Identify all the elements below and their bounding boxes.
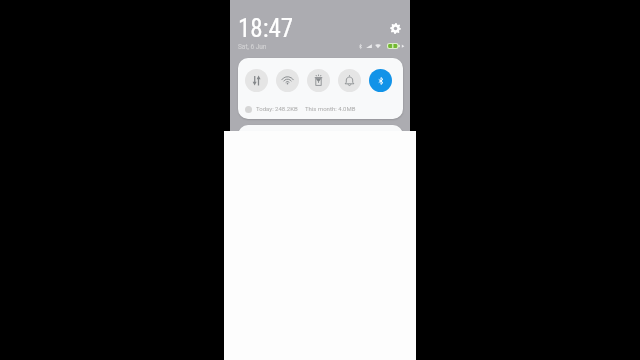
button[interactable]: Sound bbox=[338, 69, 361, 92]
staticText: 18:47 bbox=[238, 14, 294, 43]
button[interactable]: Flashlight bbox=[307, 69, 330, 92]
button[interactable]: Settings bbox=[385, 18, 405, 38]
button[interactable]: Bluetooth bbox=[369, 69, 392, 92]
button[interactable]: Wi-Fi bbox=[276, 69, 299, 92]
button[interactable]: Mobile data bbox=[245, 69, 268, 92]
staticText: Sat, 6 Jun bbox=[238, 43, 267, 51]
staticText: This month: 4.0MB bbox=[305, 105, 356, 112]
staticText: Today: 248.2KB bbox=[256, 105, 298, 112]
